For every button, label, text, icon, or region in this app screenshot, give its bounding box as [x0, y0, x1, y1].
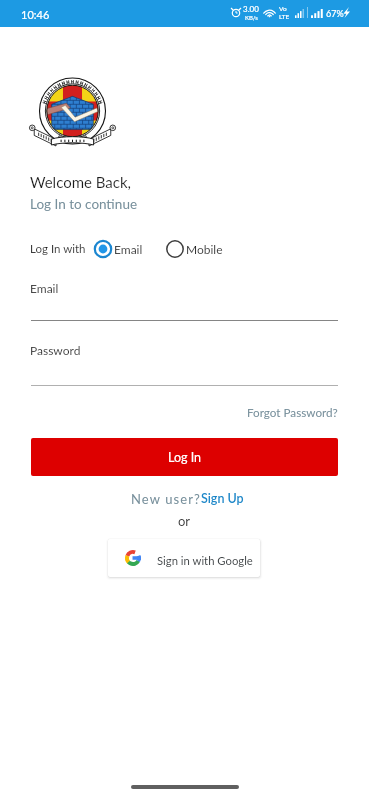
- button[interactable]: Log In: [31, 438, 338, 476]
- staticText: Mobile: [186, 242, 223, 256]
- staticText: New user?: [131, 491, 201, 507]
- button[interactable]: Email: [93, 239, 143, 259]
- button[interactable]: New user?: [131, 491, 244, 507]
- staticText: LTE: [279, 13, 290, 21]
- staticText: Log In: [168, 450, 202, 465]
- staticText: 10:46: [21, 8, 50, 21]
- staticText: Email: [30, 281, 59, 295]
- button[interactable]: Forgot Password?: [247, 405, 338, 419]
- staticText: Log In with: [30, 242, 86, 256]
- staticText: KB/s: [245, 14, 258, 21]
- button[interactable]: Sign in with Google: [108, 539, 260, 577]
- staticText: Log In to continue: [30, 196, 138, 212]
- staticText: 3.00: [243, 4, 259, 14]
- staticText: Sign in with Google: [157, 554, 253, 568]
- staticText: Welcome Back,: [30, 173, 131, 191]
- button[interactable]: Mobile: [165, 239, 223, 259]
- staticText: Forgot Password?: [247, 405, 338, 419]
- staticText: Password: [30, 343, 81, 357]
- staticText: or: [178, 513, 191, 529]
- staticText: Vo: [279, 5, 287, 13]
- staticText: Sign Up: [201, 491, 244, 506]
- staticText: Email: [114, 242, 143, 256]
- staticText: 67%: [326, 8, 344, 19]
